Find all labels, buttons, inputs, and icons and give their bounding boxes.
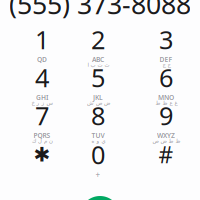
staticText: (555) 373-8088	[9, 0, 191, 22]
button[interactable]: 2	[70, 28, 126, 62]
button[interactable]: 7	[14, 104, 70, 138]
staticText: ح ج	[162, 62, 170, 68]
button[interactable]: Call	[80, 196, 120, 200]
button[interactable]: #	[138, 143, 194, 173]
staticText: 3	[159, 23, 173, 56]
staticText: 1	[35, 23, 49, 56]
staticText: QD	[37, 55, 47, 64]
staticText: ي و ه	[91, 138, 105, 144]
button[interactable]: 8	[70, 104, 126, 138]
staticText: +	[95, 169, 100, 180]
button[interactable]: ✱	[14, 143, 70, 173]
staticText: 8	[91, 99, 105, 132]
staticText: 6	[159, 61, 173, 94]
staticText: 9	[159, 99, 173, 132]
staticText: DEF	[159, 55, 172, 64]
button[interactable]: 9	[138, 104, 194, 138]
staticText: TUV	[91, 131, 104, 140]
staticText: ن م ل ك	[31, 138, 52, 144]
staticText: 0	[91, 138, 105, 171]
button[interactable]: 3	[138, 28, 194, 62]
staticText: 7	[35, 99, 49, 132]
staticText: #	[158, 139, 173, 169]
button[interactable]: 5	[70, 66, 126, 100]
staticText: JKL	[93, 93, 103, 102]
staticText: MNO	[158, 93, 174, 102]
staticText: غ ع ظ ط	[155, 100, 177, 106]
staticText: ✱	[33, 143, 50, 166]
staticText: 4	[35, 61, 49, 94]
staticText: س ز ر خ	[31, 100, 53, 106]
staticText: GHI	[36, 93, 48, 102]
button[interactable]: 0	[70, 143, 126, 173]
staticText: ظ ط ض ص	[152, 138, 180, 144]
staticText: 2	[91, 23, 105, 56]
staticText: ABC	[92, 55, 104, 64]
button[interactable]: 1	[14, 28, 70, 62]
button[interactable]: 4	[14, 66, 70, 100]
staticText: ض ص ش	[86, 100, 109, 106]
staticText: PQRS	[33, 131, 50, 140]
staticText: 5	[91, 61, 105, 94]
button[interactable]: 6	[138, 66, 194, 100]
staticText: ث ت ب ا	[87, 62, 109, 68]
staticText: WXYZ	[157, 131, 175, 140]
